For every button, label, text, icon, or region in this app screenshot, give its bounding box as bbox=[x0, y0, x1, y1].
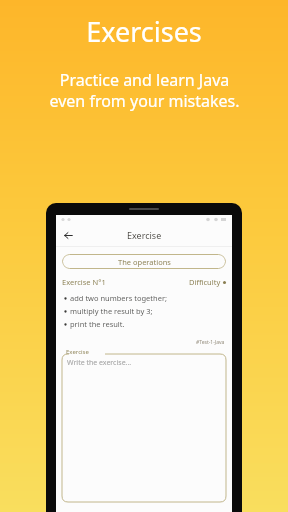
staticText: Difficulty bbox=[189, 277, 221, 287]
staticText: multiply the result by 3; bbox=[70, 306, 153, 316]
staticText: Exercise N°1 bbox=[62, 277, 106, 287]
staticText: Practice and learn Java even from your m… bbox=[49, 69, 240, 112]
staticText: #Test-1-Java bbox=[196, 339, 225, 346]
staticText: Exercise bbox=[127, 229, 162, 241]
button[interactable]: Exercise bbox=[62, 350, 226, 502]
staticText: Exercises bbox=[86, 13, 202, 50]
button[interactable]: The operations bbox=[62, 254, 226, 269]
staticText: add two numbers together; bbox=[70, 293, 168, 303]
staticText: Exercise bbox=[66, 348, 89, 356]
button[interactable]: Difficulty bbox=[189, 277, 226, 287]
staticText: print the result. bbox=[70, 319, 125, 329]
button[interactable]: Back bbox=[60, 227, 76, 243]
staticText: The operations bbox=[118, 257, 171, 267]
staticText: Write the exercise... bbox=[67, 358, 132, 368]
